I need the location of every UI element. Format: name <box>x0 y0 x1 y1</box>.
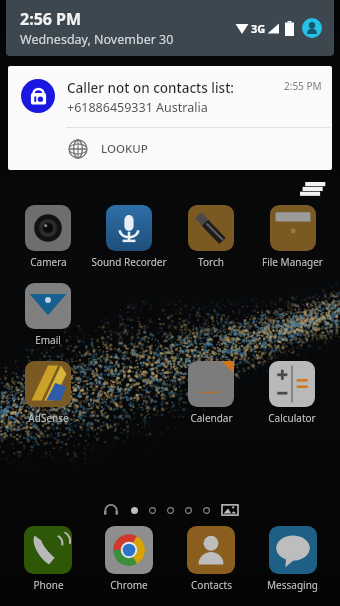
button[interactable]: Email <box>25 283 71 347</box>
staticText: 3G <box>251 21 266 36</box>
staticText: LOOKUP <box>101 141 148 157</box>
staticText: +61886459331 Australia <box>67 99 208 116</box>
staticText: Contacts <box>191 578 232 592</box>
staticText: Messaging <box>267 578 318 592</box>
button[interactable]: Calendar <box>188 361 234 425</box>
button[interactable]: User account <box>302 18 322 38</box>
button[interactable]: AdSense <box>25 361 71 425</box>
staticText: Email <box>35 333 61 347</box>
staticText: Phone <box>33 578 64 592</box>
button[interactable]: Chrome <box>105 526 153 592</box>
staticText: 2:56 PM <box>20 8 82 30</box>
button[interactable]: Music <box>103 502 119 518</box>
button[interactable]: Phone <box>24 526 72 592</box>
staticText: 2:55 PM <box>284 79 322 93</box>
button[interactable]: More notifications <box>300 182 324 197</box>
staticText: Wednesday, November 30 <box>20 31 174 48</box>
button[interactable]: Wallpapers <box>222 502 238 518</box>
button[interactable]: File Manager <box>262 205 323 269</box>
staticText: Chrome <box>110 578 148 592</box>
button[interactable]: LOOKUP <box>8 128 332 170</box>
button[interactable]: Contacts <box>187 526 235 592</box>
staticText: Calendar <box>190 411 233 425</box>
staticText: Torch <box>198 255 224 269</box>
staticText: AdSense <box>28 411 69 425</box>
button[interactable]: Calculator <box>268 361 316 425</box>
button[interactable]: Caller not on contacts list: <box>8 66 332 170</box>
button[interactable]: Torch <box>188 205 234 269</box>
staticText: Caller not on contacts list: <box>67 79 234 97</box>
button[interactable]: Messaging <box>267 526 318 592</box>
staticText: File Manager <box>262 255 323 269</box>
staticText: Sound Recorder <box>91 255 167 269</box>
staticText: Camera <box>30 255 67 269</box>
button[interactable]: Camera <box>25 205 71 269</box>
button[interactable]: Sound Recorder <box>91 205 167 269</box>
staticText: Calculator <box>268 411 316 425</box>
